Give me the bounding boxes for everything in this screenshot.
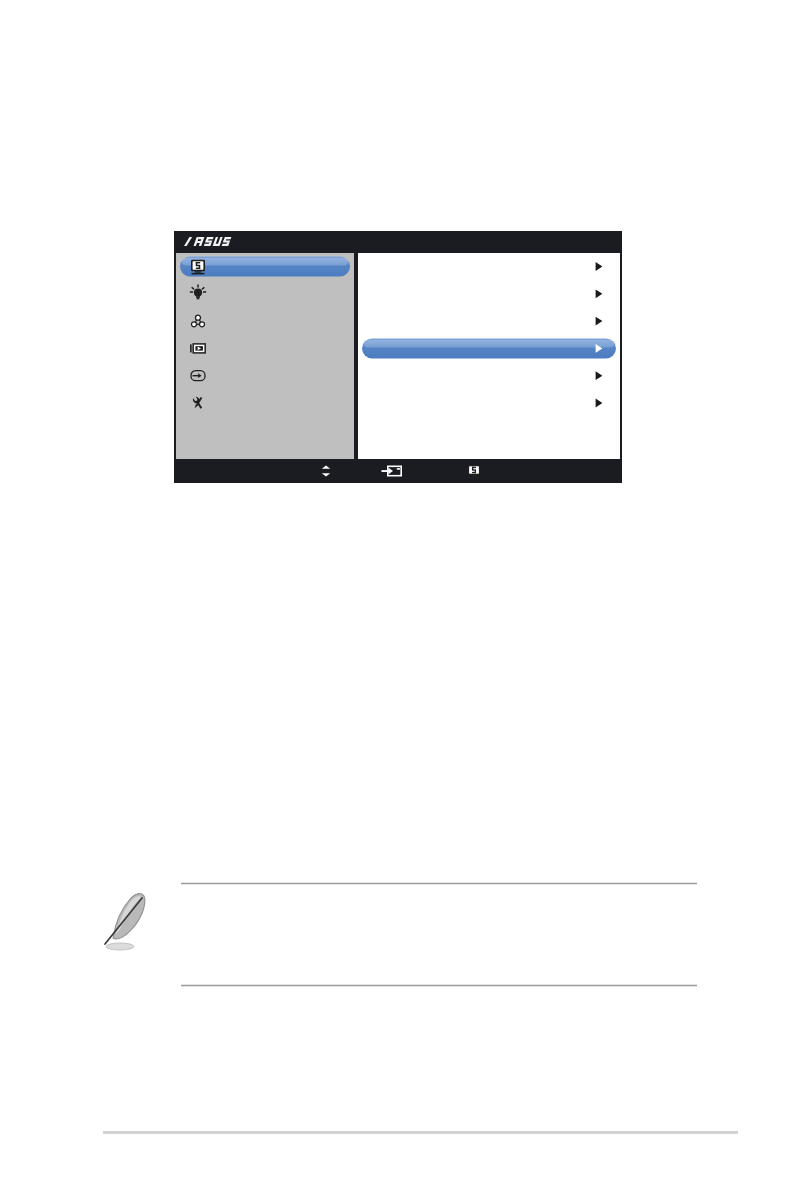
other: ASUS monitor OSD menu (0, 0, 795, 1197)
